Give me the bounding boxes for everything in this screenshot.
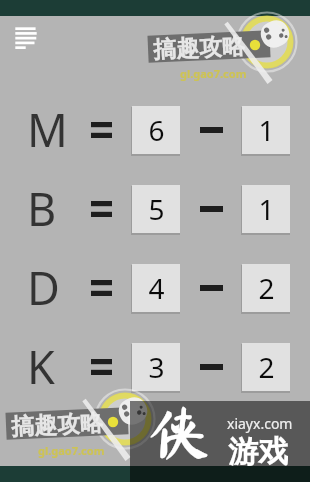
staticText: gl.gao7.com [180,66,247,81]
staticText: K [27,336,55,390]
button[interactable]: 1 [242,185,290,233]
button[interactable]: 1 [242,106,290,154]
staticText: 游戏 [228,433,288,471]
button[interactable]: 2 [242,343,290,391]
button[interactable]: 3 [132,343,180,391]
staticText: 4 [148,269,165,307]
staticText: xiayx.com [227,414,293,433]
staticText: 6 [148,111,165,149]
button[interactable]: 5 [132,185,180,233]
staticText: 2 [258,348,275,386]
button[interactable]: 4 [132,264,180,312]
button[interactable]: 2 [242,264,290,312]
staticText: 5 [148,190,165,228]
staticText: 搞趣攻略 [152,31,246,62]
staticText: 侠 [148,400,211,462]
staticText: B [27,178,57,232]
staticText: M [27,99,67,153]
staticText: 1 [258,190,275,228]
staticText: 1 [258,111,275,149]
button[interactable]: Menu [11,23,41,52]
staticText: 2 [258,269,275,307]
staticText: gl.gao7.com [38,443,105,458]
button[interactable]: 6 [132,106,180,154]
staticText: 3 [148,348,165,386]
staticText: 搞趣攻略 [10,408,104,439]
staticText: D [27,257,60,311]
